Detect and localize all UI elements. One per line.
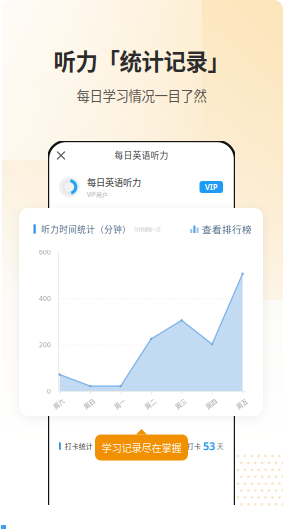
button[interactable]: 查看排行榜 — [190, 222, 252, 236]
staticText: 听力时间统计（分钟） — [41, 223, 131, 235]
staticText: 周三 — [175, 399, 187, 408]
staticText: 0 — [47, 387, 51, 395]
staticText: 200 — [39, 340, 51, 349]
staticText: 5分钟更新一次 — [134, 226, 160, 232]
staticText: 每日学习情况一目了然 — [76, 85, 206, 105]
staticText: 天 — [217, 441, 223, 451]
button[interactable]: 关闭 — [52, 147, 69, 164]
staticText: 打卡统计 — [65, 441, 93, 451]
staticText: 每日英语听力 — [114, 149, 168, 161]
staticText: 学习记录尽在掌握 — [101, 440, 181, 455]
staticText: 听力「统计记录」 — [53, 44, 229, 76]
staticText: VIP — [205, 182, 218, 192]
staticText: 周日 — [83, 399, 95, 408]
staticText: 查看排行榜 — [202, 222, 252, 236]
staticText: 53 — [203, 439, 215, 453]
staticText: 周二 — [144, 399, 156, 408]
staticText: 每日英语听力 — [87, 175, 141, 189]
staticText: 周四 — [205, 399, 217, 408]
staticText: 周五 — [236, 399, 248, 408]
staticText: 600 — [39, 248, 51, 256]
staticText: VIP用户 — [87, 190, 108, 199]
staticText: 打卡 — [187, 441, 201, 451]
staticText: 周一 — [114, 399, 126, 408]
button[interactable]: 每日英语听力 — [48, 174, 235, 200]
staticText: 周六 — [53, 399, 65, 408]
staticText: 400 — [39, 294, 51, 303]
